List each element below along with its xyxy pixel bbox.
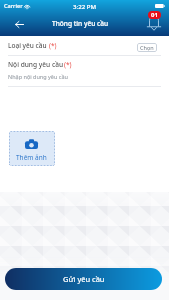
staticText: 3:22 PM bbox=[73, 2, 97, 10]
staticText: (*) bbox=[64, 60, 72, 69]
button[interactable]: Thêm ảnh bbox=[9, 131, 55, 166]
staticText: Nội dung yêu cầu bbox=[8, 60, 64, 69]
staticText: Carrier bbox=[4, 2, 23, 10]
staticText: Nhập nội dung yêu cầu bbox=[8, 73, 68, 80]
staticText: Loại yêu cầu bbox=[8, 41, 49, 50]
button[interactable]: Back bbox=[0, 11, 30, 36]
staticText: Gửi yêu cầu bbox=[63, 274, 105, 284]
staticText: Thông tin yêu cầu bbox=[52, 19, 109, 28]
staticText: 01 bbox=[151, 11, 158, 19]
staticText: (*) bbox=[49, 41, 57, 50]
button[interactable]: Gửi yêu cầu bbox=[5, 268, 162, 290]
staticText: Chọn bbox=[140, 44, 154, 51]
button[interactable]: Notifications bbox=[143, 11, 169, 36]
staticText: Thêm ảnh bbox=[16, 153, 47, 162]
button[interactable]: Chọn bbox=[137, 43, 157, 52]
